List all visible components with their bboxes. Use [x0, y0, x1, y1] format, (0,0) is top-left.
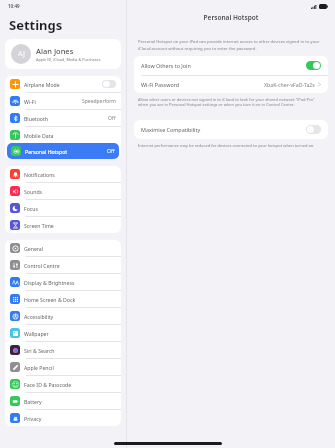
staticText: Privacy: [24, 415, 116, 422]
button[interactable]: Wi-Fi Password: [134, 76, 328, 93]
staticText: Alan Jones: [36, 46, 74, 56]
staticText: Wi-Fi Password: [141, 81, 264, 88]
staticText: Face ID & Passcode: [24, 381, 116, 388]
staticText: Display & Brightness: [24, 279, 116, 286]
staticText: Bluetooth: [24, 115, 108, 122]
staticText: Personal Hotspot: [127, 13, 335, 22]
staticText: Screen Time: [24, 222, 116, 229]
button[interactable]: Sounds: [5, 183, 121, 199]
staticText: Battery: [24, 398, 116, 405]
button[interactable]: Accessibility: [5, 308, 121, 324]
staticText: 10:49: [8, 3, 20, 9]
staticText: Mobile Data: [24, 132, 116, 139]
button[interactable]: Face ID & Passcode: [5, 376, 121, 392]
button[interactable]: Mobile Data: [5, 127, 121, 143]
staticText: Allow other users or devices not signed …: [138, 97, 324, 108]
staticText: Airplane Mode: [24, 81, 102, 88]
button[interactable]: Notifications: [5, 166, 121, 182]
button[interactable]: Wi-Fi: [5, 93, 121, 109]
button[interactable]: Siri & Search: [5, 342, 121, 358]
staticText: Home Screen & Dock: [24, 296, 116, 303]
button[interactable]: Wallpaper: [5, 325, 121, 341]
staticText: Speedperform: [82, 98, 116, 105]
staticText: Maximise Compatibility: [141, 126, 306, 133]
button[interactable]: Apple Pencil: [5, 359, 121, 375]
button[interactable]: Personal Hotspot: [7, 143, 119, 159]
staticText: Off: [107, 148, 115, 155]
staticText: Wallpaper: [24, 330, 116, 337]
button[interactable]: Screen Time: [5, 217, 121, 233]
staticText: Sounds: [24, 188, 116, 195]
staticText: Personal Hotspot: [25, 148, 107, 155]
staticText: Control Centre: [24, 262, 116, 269]
button[interactable]: AJ: [5, 39, 121, 69]
staticText: Allow Others to Join: [141, 62, 306, 69]
staticText: Focus: [24, 205, 116, 212]
button[interactable]: Display & Brightness: [5, 274, 121, 290]
button[interactable]: Airplane Mode: [5, 76, 121, 92]
staticText: Notifications: [24, 171, 116, 178]
staticText: Accessibility: [24, 313, 116, 320]
button[interactable]: Focus: [5, 200, 121, 216]
button[interactable]: Battery: [5, 393, 121, 409]
staticText: General: [24, 245, 116, 252]
button[interactable]: General: [5, 240, 121, 256]
staticText: Settings: [9, 16, 63, 34]
staticText: Off: [108, 115, 116, 122]
button[interactable]: Home Screen & Dock: [5, 291, 121, 307]
button[interactable]: Allow Others to Join: [134, 56, 328, 75]
staticText: Internet performance may be reduced for …: [138, 143, 315, 148]
staticText: Siri & Search: [24, 347, 116, 354]
staticText: XbaK-cher-vFaD-Ta2s: [264, 81, 315, 88]
staticText: Apple ID, iCloud, Media & Purchases: [36, 57, 101, 62]
staticText: Wi-Fi: [24, 98, 82, 105]
button[interactable]: Maximise Compatibility: [134, 120, 328, 139]
staticText: Personal Hotspot on your iPad can provid…: [138, 39, 324, 51]
staticText: Apple Pencil: [24, 364, 116, 371]
button[interactable]: Bluetooth: [5, 110, 121, 126]
button[interactable]: Control Centre: [5, 257, 121, 273]
staticText: AJ: [18, 49, 25, 59]
button[interactable]: Privacy: [5, 410, 121, 426]
